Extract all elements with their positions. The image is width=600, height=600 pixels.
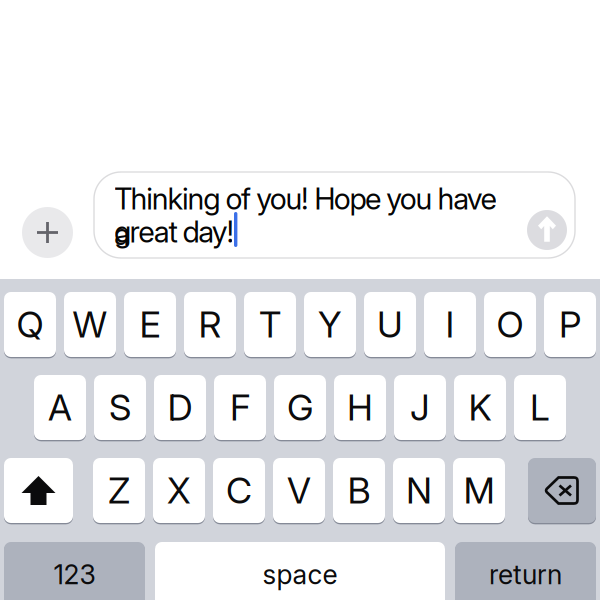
button[interactable]: W	[64, 292, 116, 357]
staticText: R	[198, 303, 221, 346]
staticText: Thinking of you! Hope you have a	[114, 181, 496, 252]
button[interactable]: return	[455, 542, 596, 600]
button[interactable]: T	[244, 292, 296, 357]
staticText: K	[468, 386, 491, 429]
staticText: Q	[16, 303, 43, 346]
button[interactable]: space	[155, 542, 445, 600]
staticText: A	[48, 386, 72, 429]
button[interactable]: D	[154, 375, 206, 440]
staticText: space	[262, 558, 337, 591]
staticText: O	[496, 303, 523, 346]
button[interactable]: X	[153, 458, 205, 523]
button[interactable]: I	[424, 292, 476, 357]
button[interactable]: Y	[304, 292, 356, 357]
button[interactable]: Z	[93, 458, 145, 523]
button[interactable]: R	[184, 292, 236, 357]
button[interactable]: G	[274, 375, 326, 440]
button[interactable]: U	[364, 292, 416, 357]
button[interactable]: S	[94, 375, 146, 440]
button[interactable]: V	[273, 458, 325, 523]
staticText: V	[287, 469, 311, 512]
button[interactable]: H	[334, 375, 386, 440]
staticText: Z	[108, 469, 130, 512]
staticText: S	[109, 386, 131, 429]
staticText: B	[347, 469, 370, 512]
button[interactable]	[22, 207, 73, 258]
button[interactable]: 123	[4, 542, 145, 600]
staticText: great day!	[114, 214, 234, 249]
staticText: G	[287, 386, 313, 429]
button[interactable]: C	[213, 458, 265, 523]
staticText: M	[463, 469, 494, 512]
staticText: 123	[53, 558, 95, 591]
button[interactable]: K	[454, 375, 506, 440]
staticText: X	[167, 469, 191, 512]
staticText: E	[139, 303, 160, 346]
staticText: D	[167, 386, 192, 429]
button[interactable]: N	[393, 458, 445, 523]
staticText: return	[489, 558, 562, 591]
button[interactable]: M	[453, 458, 505, 523]
staticText: N	[406, 469, 432, 512]
button[interactable]	[527, 210, 567, 250]
button[interactable]: Q	[4, 292, 56, 357]
button[interactable]	[528, 458, 596, 523]
button[interactable]: O	[484, 292, 536, 357]
button[interactable]: A	[34, 375, 86, 440]
staticText: J	[410, 386, 430, 429]
staticText: F	[230, 386, 250, 429]
button[interactable]: B	[333, 458, 385, 523]
button[interactable]	[4, 458, 73, 523]
staticText: I	[445, 303, 454, 346]
button[interactable]: J	[394, 375, 446, 440]
button[interactable]: P	[544, 292, 596, 357]
staticText: Y	[318, 303, 342, 346]
staticText: P	[559, 303, 581, 346]
staticText: W	[72, 303, 107, 346]
staticText: H	[347, 386, 373, 429]
button[interactable]: L	[514, 375, 566, 440]
button[interactable]: E	[124, 292, 176, 357]
staticText: U	[377, 303, 403, 346]
staticText: T	[259, 303, 281, 346]
staticText: L	[530, 386, 550, 429]
staticText: C	[226, 469, 252, 512]
button[interactable]: F	[214, 375, 266, 440]
